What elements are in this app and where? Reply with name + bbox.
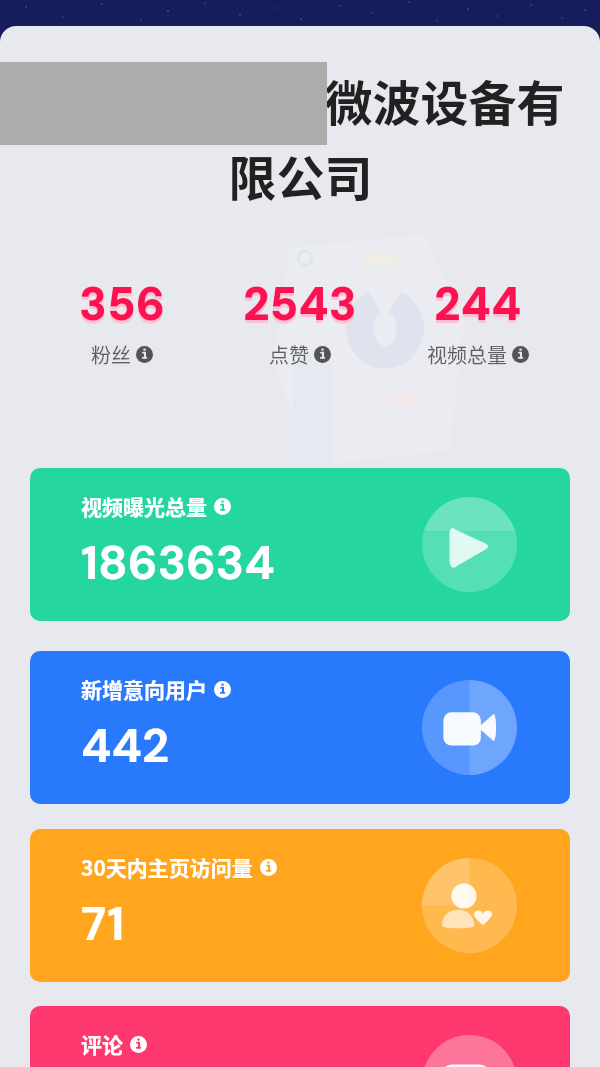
staticText: 71: [81, 893, 125, 954]
staticText: 限公司: [228, 140, 373, 210]
staticText: 视频曝光总量: [81, 491, 207, 521]
staticText: 356: [79, 274, 165, 334]
other: New intent users: [422, 680, 517, 775]
staticText: 视频总量: [427, 340, 507, 369]
other: Video exposure total: [422, 497, 517, 592]
button[interactable]: 新增意向用户: [30, 651, 570, 804]
other: Homepage visits: [422, 858, 517, 953]
staticText: 2543: [243, 274, 357, 334]
button[interactable]: 356: [79, 274, 165, 369]
staticText: 某某某某某某微波设备有: [36, 65, 565, 135]
button[interactable]: 30天内主页访问量: [30, 829, 570, 982]
staticText: 30天内主页访问量: [81, 852, 253, 882]
button[interactable]: 244: [427, 274, 529, 369]
other: Comments: [422, 1035, 517, 1067]
staticText: 442: [81, 715, 170, 776]
staticText: 2543: [243, 277, 357, 337]
staticText: 356: [79, 277, 165, 337]
button[interactable]: 2543: [243, 274, 357, 369]
button[interactable]: 视频曝光总量: [30, 468, 570, 621]
staticText: 新增意向用户: [81, 674, 207, 704]
button[interactable]: 评论: [30, 1006, 570, 1067]
staticText: 粉丝: [91, 340, 131, 369]
staticText: 244: [434, 277, 522, 337]
staticText: 244: [434, 274, 522, 334]
staticText: 评论: [81, 1029, 123, 1059]
staticText: 1863634: [81, 532, 275, 593]
staticText: 点赞: [269, 340, 309, 369]
